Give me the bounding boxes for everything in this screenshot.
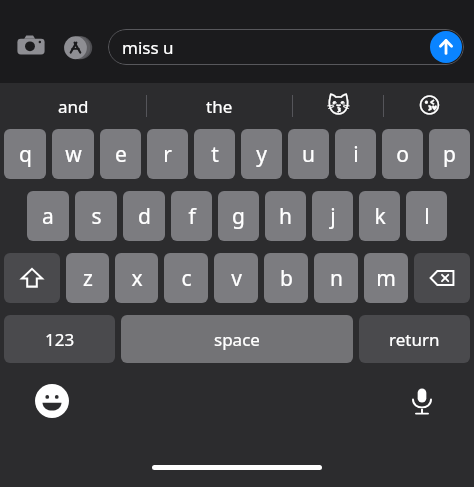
staticText: c [181, 264, 192, 293]
button[interactable]: u [288, 129, 329, 179]
button[interactable]: 123 [4, 315, 115, 363]
staticText: n [330, 264, 343, 293]
button[interactable]: o [382, 129, 423, 179]
staticText: w [65, 140, 82, 169]
button[interactable]: g [218, 191, 259, 241]
button[interactable]: Send [430, 31, 462, 63]
staticText: z [83, 264, 93, 293]
staticText: u [302, 140, 315, 169]
button[interactable]: 😽 [293, 83, 383, 129]
button[interactable]: s [75, 191, 117, 241]
staticText: v [231, 264, 242, 293]
button[interactable]: i [335, 129, 376, 179]
button[interactable]: space [121, 315, 353, 363]
staticText: 123 [45, 328, 75, 351]
staticText: a [42, 202, 54, 231]
staticText: k [374, 202, 386, 231]
staticText: h [279, 202, 292, 231]
staticText: o [396, 140, 409, 169]
staticText: p [443, 140, 456, 169]
button[interactable]: the [147, 83, 292, 129]
button[interactable]: t [194, 129, 235, 179]
staticText: q [19, 140, 32, 169]
staticText: t [211, 140, 219, 169]
staticText: y [256, 140, 267, 169]
staticText: s [91, 202, 102, 231]
button[interactable]: x [115, 253, 158, 303]
staticText: b [280, 264, 293, 293]
staticText: d [138, 202, 151, 231]
button[interactable]: m [364, 253, 408, 303]
staticText: miss u [122, 36, 174, 59]
staticText: m [376, 264, 396, 293]
button[interactable]: Shift [4, 253, 60, 303]
button[interactable]: k [359, 191, 400, 241]
button[interactable]: App Store [58, 28, 96, 66]
button[interactable]: h [265, 191, 306, 241]
button[interactable]: c [164, 253, 208, 303]
staticText: and [58, 95, 89, 118]
staticText: 😘 [418, 93, 441, 119]
button[interactable]: Camera [14, 30, 48, 64]
staticText: e [115, 140, 127, 169]
button[interactable]: a [27, 191, 69, 241]
button[interactable]: l [406, 191, 447, 241]
staticText: the [206, 95, 233, 118]
staticText: r [163, 140, 172, 169]
button[interactable]: and [0, 83, 146, 129]
staticText: space [214, 328, 260, 351]
button[interactable]: v [214, 253, 258, 303]
staticText: 😽 [327, 93, 350, 119]
button[interactable]: 😘 [384, 83, 474, 129]
button[interactable]: w [52, 129, 94, 179]
button[interactable]: j [312, 191, 353, 241]
button[interactable]: e [100, 129, 141, 179]
button[interactable]: Emoji keyboard [32, 381, 72, 421]
button[interactable]: y [241, 129, 282, 179]
staticText: i [353, 140, 359, 169]
staticText: j [330, 202, 336, 231]
button[interactable]: q [4, 129, 46, 179]
button[interactable]: return [359, 315, 470, 363]
button[interactable]: miss u [108, 29, 464, 65]
staticText: l [424, 202, 430, 231]
button[interactable]: d [123, 191, 165, 241]
button[interactable]: z [66, 253, 109, 303]
button[interactable]: Dictation [402, 381, 442, 421]
button[interactable]: r [147, 129, 188, 179]
staticText: return [389, 328, 440, 351]
button[interactable]: f [171, 191, 212, 241]
staticText: x [131, 264, 143, 293]
button[interactable]: b [264, 253, 308, 303]
button[interactable]: Backspace [414, 253, 470, 303]
button[interactable]: n [314, 253, 358, 303]
button[interactable]: p [429, 129, 470, 179]
staticText: f [188, 202, 196, 231]
staticText: g [232, 202, 245, 231]
